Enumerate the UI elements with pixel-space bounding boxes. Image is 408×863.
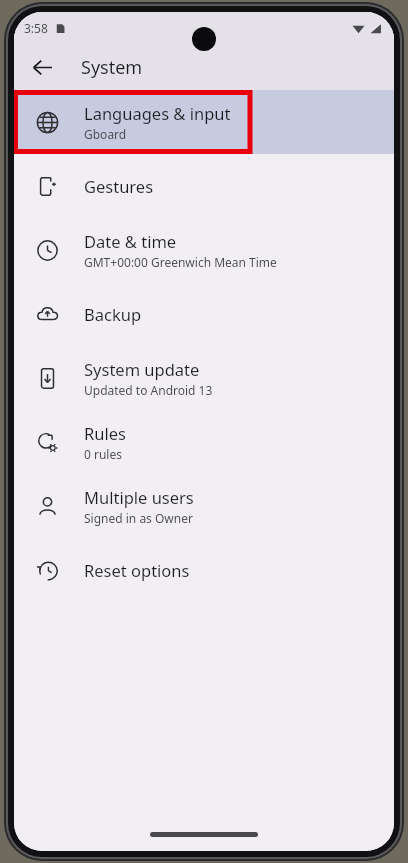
staticText: Date & time bbox=[84, 230, 177, 252]
button[interactable]: Languages & input bbox=[14, 90, 394, 154]
button[interactable]: Back bbox=[22, 47, 62, 87]
button[interactable]: Multiple users bbox=[14, 474, 394, 538]
button[interactable]: Reset options bbox=[14, 538, 394, 602]
staticText: Signed in as Owner bbox=[84, 510, 193, 526]
staticText: Rules bbox=[84, 422, 126, 444]
staticText: Languages & input bbox=[84, 102, 231, 124]
staticText: Backup bbox=[84, 303, 142, 325]
staticText: System update bbox=[84, 358, 200, 380]
button[interactable]: Date & time bbox=[14, 218, 394, 282]
staticText: 3:58 bbox=[24, 20, 48, 36]
staticText: Multiple users bbox=[84, 486, 194, 508]
staticText: Gestures bbox=[84, 175, 154, 197]
staticText: GMT+00:00 Greenwich Mean Time bbox=[84, 254, 277, 270]
staticText: Gboard bbox=[84, 126, 127, 142]
button[interactable]: Backup bbox=[14, 282, 394, 346]
staticText: Reset options bbox=[84, 559, 190, 581]
button[interactable]: Rules bbox=[14, 410, 394, 474]
staticText: System bbox=[81, 55, 143, 80]
button[interactable]: Gestures bbox=[14, 154, 394, 218]
staticText: 0 rules bbox=[84, 446, 122, 462]
staticText: Updated to Android 13 bbox=[84, 382, 213, 398]
button[interactable]: System update bbox=[14, 346, 394, 410]
